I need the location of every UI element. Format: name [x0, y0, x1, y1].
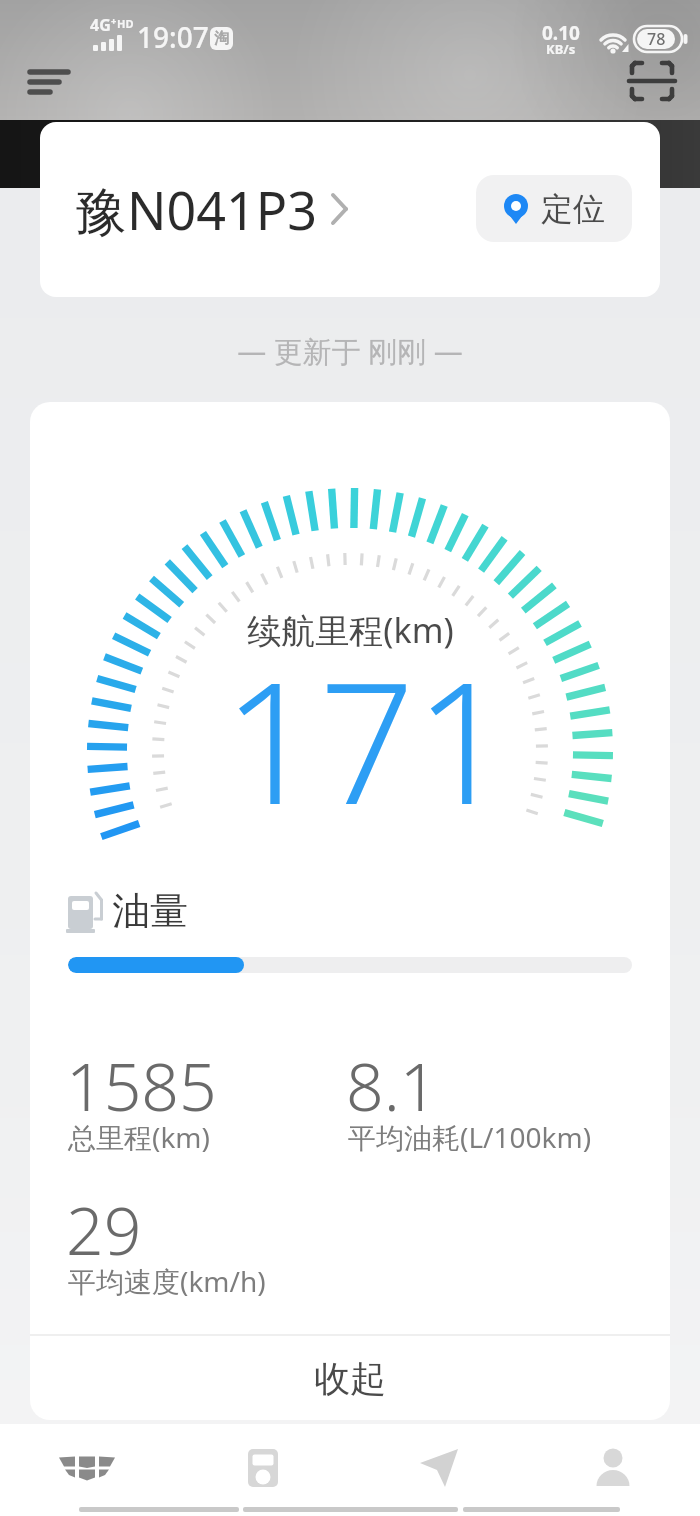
button[interactable]	[40, 1434, 135, 1494]
staticText: 78	[647, 28, 666, 50]
button[interactable]: 定位	[476, 175, 632, 242]
staticText: 收起	[314, 1356, 386, 1401]
button[interactable]: 豫N041P3	[40, 122, 660, 297]
staticText: 0.10	[542, 20, 580, 46]
staticText: — 更新于 刚刚 —	[237, 331, 463, 371]
staticText: 总里程(km)	[68, 1118, 210, 1156]
button[interactable]: 收起	[30, 1336, 670, 1420]
staticText: 续航里程(km)	[247, 607, 454, 653]
staticText: 1585	[66, 1040, 217, 1130]
staticText: 油量	[112, 887, 188, 935]
staticText: 8.1	[346, 1040, 438, 1130]
button[interactable]	[390, 1434, 485, 1494]
staticText: 豫N041P3	[75, 174, 317, 245]
staticText: 淘	[214, 29, 229, 48]
staticText: 定位	[541, 189, 605, 229]
staticText: 4G⁺	[90, 14, 117, 36]
button[interactable]	[18, 58, 80, 106]
button[interactable]	[620, 52, 682, 110]
button[interactable]	[215, 1434, 310, 1494]
button[interactable]	[565, 1434, 660, 1494]
staticText: 29	[66, 1184, 142, 1274]
staticText: 19:07	[137, 18, 209, 56]
staticText: 平均速度(km/h)	[68, 1262, 266, 1300]
staticText: HD	[117, 16, 134, 31]
staticText: 平均油耗(L/100km)	[348, 1118, 592, 1156]
staticText: KB/s	[546, 40, 576, 58]
staticText: 171	[223, 624, 511, 853]
